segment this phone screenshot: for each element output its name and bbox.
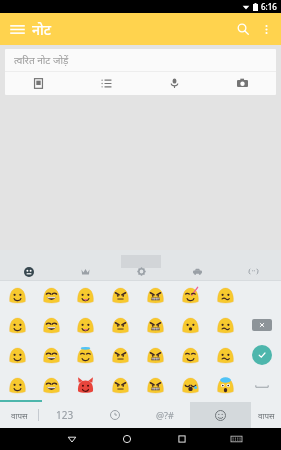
button[interactable]: Emoji	[34, 281, 68, 310]
button[interactable]: Emoji	[103, 340, 138, 370]
button[interactable]: @?#	[140, 402, 190, 428]
button[interactable]: Travel	[169, 263, 225, 280]
button[interactable]: त्वरित नोट जोड़ें	[5, 49, 276, 71]
button[interactable]: Recent	[90, 402, 140, 428]
button[interactable]: Emoji	[138, 281, 173, 310]
button[interactable]: 123	[39, 402, 90, 428]
button[interactable]: Emoji	[208, 281, 243, 310]
staticText: 6:16	[261, 1, 277, 12]
button[interactable]: Emoji	[34, 340, 68, 370]
button[interactable]: Photo note	[208, 72, 276, 95]
button[interactable]: वापस	[251, 402, 281, 428]
button[interactable]: Switch keyboard	[209, 428, 264, 450]
button[interactable]: Symbols	[225, 263, 281, 280]
button[interactable]: Emoji	[68, 340, 103, 370]
button[interactable]: Emoji	[103, 310, 138, 340]
button[interactable]: Emoji	[103, 370, 138, 400]
button[interactable]: New note	[5, 72, 72, 95]
button[interactable]: Emoji	[0, 310, 34, 340]
button[interactable]: Emoji	[0, 370, 34, 400]
staticText: @?#	[156, 409, 174, 421]
button[interactable]: Emoji	[68, 370, 103, 400]
button[interactable]: Back	[44, 428, 99, 450]
button[interactable]: Home	[99, 428, 154, 450]
button[interactable]: Emoji	[190, 402, 251, 428]
button[interactable]: Objects	[113, 263, 169, 280]
button[interactable]: Open navigation drawer	[6, 18, 28, 40]
button[interactable]: Emoji	[173, 281, 208, 310]
button[interactable]: New list	[72, 72, 140, 95]
button[interactable]: People	[57, 263, 113, 280]
button[interactable]: Voice note	[140, 72, 208, 95]
staticText: वापस	[11, 410, 28, 421]
button[interactable]: Backspace	[252, 319, 272, 331]
button[interactable]: Emoji	[103, 281, 138, 310]
button[interactable]: Emoji	[68, 281, 103, 310]
staticText: नोट	[32, 20, 51, 39]
button[interactable]: वापस	[0, 402, 38, 428]
staticText: 123	[56, 408, 74, 422]
button[interactable]: Emoji	[208, 340, 243, 370]
button[interactable]: Emoji	[34, 310, 68, 340]
staticText: त्वरित नोट जोड़ें	[14, 53, 69, 67]
button[interactable]: Emoji	[173, 340, 208, 370]
button[interactable]: Emoji	[68, 310, 103, 340]
button[interactable]: Emoji	[0, 340, 34, 370]
button[interactable]: Smileys	[0, 263, 57, 280]
button[interactable]: Emoji	[34, 370, 68, 400]
button[interactable]: Emoji	[138, 370, 173, 400]
button[interactable]: Emoji	[138, 340, 173, 370]
staticText: वापस	[258, 410, 275, 421]
button[interactable]: Emoji	[0, 281, 34, 310]
button[interactable]: Emoji	[138, 310, 173, 340]
button[interactable]: Emoji	[208, 310, 243, 340]
button[interactable]: More options	[255, 18, 277, 40]
button[interactable]: Search	[231, 17, 255, 41]
button[interactable]: Emoji	[173, 370, 208, 400]
button[interactable]: Space	[251, 378, 273, 392]
button[interactable]: Emoji	[173, 310, 208, 340]
button[interactable]: Recent apps	[154, 428, 209, 450]
button[interactable]: Emoji	[208, 370, 243, 400]
button[interactable]: Enter	[252, 345, 272, 365]
